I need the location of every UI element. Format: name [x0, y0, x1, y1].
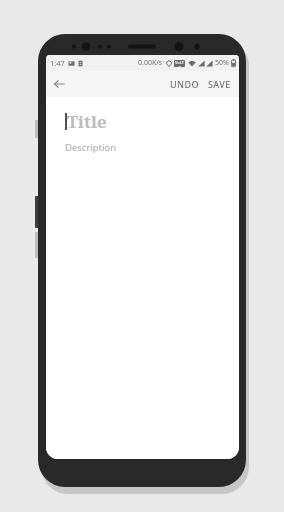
- staticText: SAVE: [208, 78, 231, 90]
- button[interactable]: Back: [47, 72, 71, 96]
- staticText: Description: [65, 141, 117, 154]
- staticText: UNDO: [170, 78, 199, 90]
- button[interactable]: Title: [65, 110, 223, 133]
- button[interactable]: SAVE: [204, 72, 235, 96]
- staticText: 0.00K/s: [138, 58, 163, 68]
- staticText: VoLTE: [174, 60, 185, 67]
- button[interactable]: Description: [65, 141, 223, 154]
- button[interactable]: UNDO: [166, 72, 203, 96]
- staticText: 1:47: [50, 58, 65, 68]
- staticText: Title: [67, 110, 107, 133]
- staticText: 50%: [215, 58, 229, 68]
